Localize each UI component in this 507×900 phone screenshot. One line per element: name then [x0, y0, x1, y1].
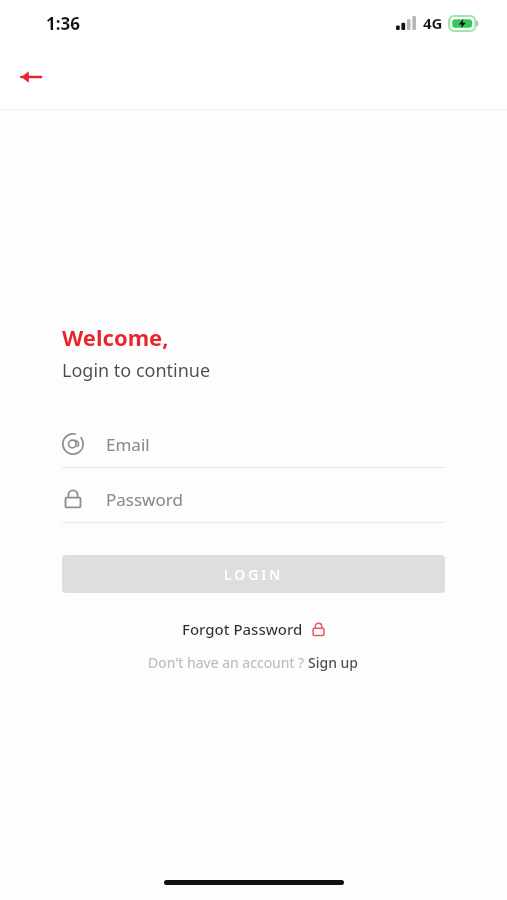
button[interactable]: Back	[8, 54, 54, 100]
button[interactable]: Forgot Password	[176, 617, 332, 641]
staticText: Forgot Password	[182, 619, 303, 639]
staticText: Sign up	[308, 653, 359, 672]
button[interactable]: Email	[62, 427, 445, 468]
staticText: 4G	[423, 13, 443, 33]
button[interactable]: Don't have an account ?	[142, 651, 365, 674]
button[interactable]: LOGIN	[62, 555, 445, 593]
staticText: Password	[106, 488, 183, 511]
button[interactable]: Password	[62, 482, 445, 523]
staticText: Welcome,	[62, 322, 169, 352]
staticText: 1:36	[46, 12, 80, 35]
staticText: Don't have an account ?	[148, 653, 308, 672]
staticText: Email	[106, 433, 150, 456]
staticText: LOGIN	[224, 565, 284, 584]
staticText: Login to continue	[62, 358, 211, 383]
